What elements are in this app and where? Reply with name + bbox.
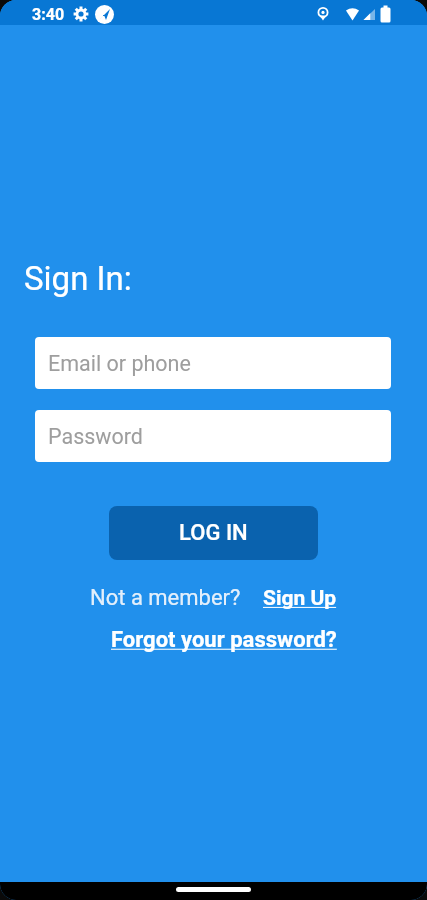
staticText: LOG IN: [179, 520, 248, 546]
button[interactable]: Password: [35, 410, 391, 462]
staticText: Sign In:: [24, 259, 132, 298]
button[interactable]: LOG IN: [109, 506, 318, 560]
staticText: Not a member?: [90, 585, 241, 611]
button[interactable]: Forgot your password?: [111, 627, 337, 653]
button[interactable]: Email or phone: [35, 337, 391, 389]
staticText: 3:40: [32, 5, 65, 24]
staticText: Password: [48, 424, 143, 449]
button[interactable]: Sign Up: [263, 586, 337, 611]
staticText: Email or phone: [48, 351, 191, 376]
